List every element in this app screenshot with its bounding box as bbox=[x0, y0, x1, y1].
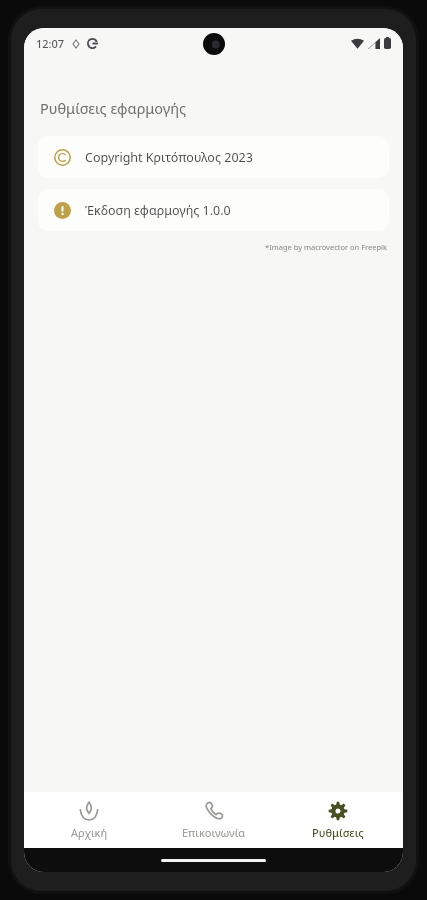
staticText: 12:07 bbox=[36, 36, 65, 51]
button[interactable]: Επικοινωνία bbox=[154, 792, 274, 848]
button[interactable]: Copyright Κριτόπουλος 2023 bbox=[38, 136, 389, 178]
button[interactable]: Ρυθμίσεις bbox=[278, 792, 398, 848]
staticText: Έκδοση εφαρμογής 1.0.0 bbox=[85, 202, 231, 219]
button[interactable]: Έκδοση εφαρμογής 1.0.0 bbox=[38, 189, 389, 231]
staticText: Ρυθμίσεις bbox=[312, 825, 364, 840]
staticText: Copyright Κριτόπουλος 2023 bbox=[85, 149, 253, 166]
staticText: *Image by macrovector on Freepik bbox=[24, 242, 387, 252]
staticText: Αρχική bbox=[71, 825, 108, 840]
button[interactable]: Αρχική bbox=[29, 792, 149, 848]
staticText: Ρυθμίσεις εφαρμογής bbox=[40, 98, 187, 118]
staticText: Επικοινωνία bbox=[182, 825, 246, 840]
